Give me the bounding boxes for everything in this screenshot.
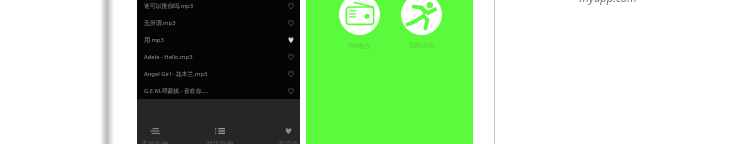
staticText: myapp.com — [543, 0, 673, 5]
staticText: Angel Girl - 花木兰.mp3 — [144, 70, 208, 78]
other: FM电台 — [339, 0, 380, 35]
other: Like — [288, 20, 294, 26]
staticText: 用.mp3 — [144, 36, 164, 44]
button[interactable]: 谁可以推你吗.mp3 — [137, 0, 300, 14]
other: 我的运动 — [401, 0, 442, 35]
other: Like — [288, 88, 294, 94]
staticText: 谁可以推你吗.mp3 — [144, 2, 194, 10]
button[interactable]: Adele - Hello.mp3 — [137, 48, 300, 65]
other: Like — [288, 3, 294, 9]
staticText: 网络歌曲 — [206, 139, 234, 144]
staticText: 我的运动 — [409, 41, 434, 49]
button[interactable]: G.E.M.邓紫棋 - 喜欢你.... — [137, 82, 300, 99]
button[interactable]: 无所谓.mp3 — [137, 14, 300, 31]
staticText: 我喜欢 — [278, 139, 299, 144]
other: Like — [288, 54, 294, 60]
button[interactable]: 用.mp3 — [137, 31, 300, 48]
staticText: 本地歌曲 — [141, 139, 169, 144]
button[interactable]: FM电台 — [333, 0, 385, 52]
other: Like — [288, 71, 294, 77]
button[interactable]: 我的运动 — [395, 0, 447, 52]
button[interactable]: 本地歌曲 — [133, 99, 177, 144]
button[interactable]: 网络歌曲 — [198, 99, 242, 144]
button[interactable]: Angel Girl - 花木兰.mp3 — [137, 65, 300, 82]
staticText: Adele - Hello.mp3 — [144, 53, 193, 61]
button[interactable]: 我喜欢 — [266, 99, 310, 144]
staticText: FM电台 — [349, 41, 371, 49]
staticText: 无所谓.mp3 — [144, 19, 176, 27]
other: Unlike — [288, 37, 294, 43]
staticText: G.E.M.邓紫棋 - 喜欢你.... — [144, 87, 208, 95]
